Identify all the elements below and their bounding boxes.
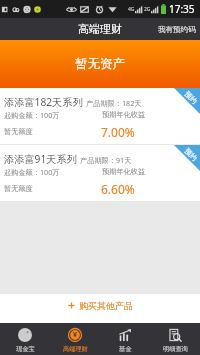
- button[interactable]: 我有预约码: [154, 18, 200, 40]
- staticText: 产品期限：182天: [86, 98, 142, 108]
- staticText: 暂无资产: [75, 56, 125, 72]
- button[interactable]: 购买其他产品: [0, 294, 200, 323]
- button[interactable]: 添添富182天系列: [0, 88, 200, 144]
- staticText: 我有预约码: [158, 25, 196, 34]
- staticText: 明细查询: [163, 345, 188, 353]
- staticText: 4G: [128, 6, 135, 13]
- button[interactable]: 添添富91天系列: [0, 145, 200, 201]
- staticText: 暂无额度: [4, 184, 33, 193]
- staticText: 高端理财: [78, 22, 122, 36]
- staticText: 高端理财: [63, 345, 88, 353]
- button[interactable]: ¥: [50, 323, 100, 355]
- staticText: 购买其他产品: [79, 300, 133, 311]
- staticText: 17:35: [169, 2, 195, 16]
- staticText: 现金宝: [16, 345, 35, 353]
- staticText: 6.60%: [101, 181, 135, 197]
- staticText: ¥: [73, 330, 78, 340]
- staticText: 起购金额：100万: [4, 167, 60, 177]
- other: 现金宝: [18, 328, 32, 342]
- staticText: 产品期限：91天: [80, 155, 132, 165]
- button[interactable]: 现金宝: [0, 323, 50, 355]
- staticText: 添添富182天系列: [4, 95, 83, 109]
- button[interactable]: 基金: [100, 323, 150, 355]
- staticText: 预期年化收益: [102, 110, 146, 119]
- staticText: 预约: [183, 89, 199, 106]
- staticText: 预期年化收益: [102, 167, 146, 176]
- staticText: 起购金额：100万: [4, 110, 60, 120]
- staticText: 7.00%: [101, 124, 135, 140]
- staticText: 预约: [183, 146, 199, 163]
- staticText: 暂无额度: [4, 127, 33, 136]
- staticText: 添添富91天系列: [4, 152, 77, 166]
- button[interactable]: 明细查询: [150, 323, 200, 355]
- staticText: 2G: [144, 6, 151, 13]
- staticText: 基金: [119, 345, 132, 353]
